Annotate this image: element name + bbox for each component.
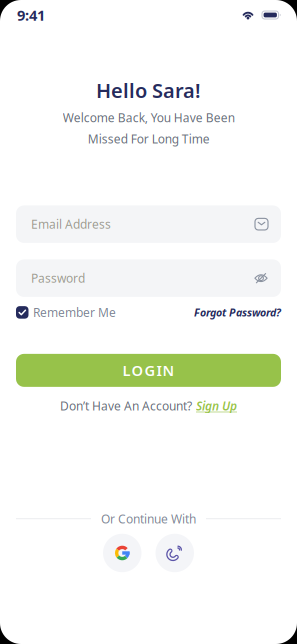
staticText: 9:41 <box>17 5 45 25</box>
secureTextField[interactable]: Password <box>31 270 246 286</box>
button[interactable]: Remember Me <box>16 304 116 320</box>
button[interactable]: Continue with phone <box>155 534 194 572</box>
staticText: Remember Me <box>33 304 116 320</box>
staticText: Hello Sara! <box>96 77 201 104</box>
staticText: Sign Up <box>196 398 237 414</box>
staticText: Welcome Back, You Have Been Missed For L… <box>62 110 234 147</box>
staticText: Email Address <box>31 216 111 232</box>
button[interactable]: Continue with Google <box>103 534 141 572</box>
button[interactable]: LOGIN <box>16 354 281 387</box>
staticText: LOGIN <box>122 361 174 380</box>
button[interactable]: Sign Up <box>196 398 237 414</box>
textField[interactable]: Email Address <box>31 216 247 232</box>
button[interactable]: Show password <box>254 272 268 284</box>
staticText: Forgot Password? <box>194 305 281 319</box>
staticText: Don’t Have An Account? <box>60 398 192 414</box>
staticText: Password <box>31 270 85 286</box>
button[interactable]: Forgot Password? <box>194 305 281 319</box>
staticText: Or Continue With <box>101 511 196 527</box>
